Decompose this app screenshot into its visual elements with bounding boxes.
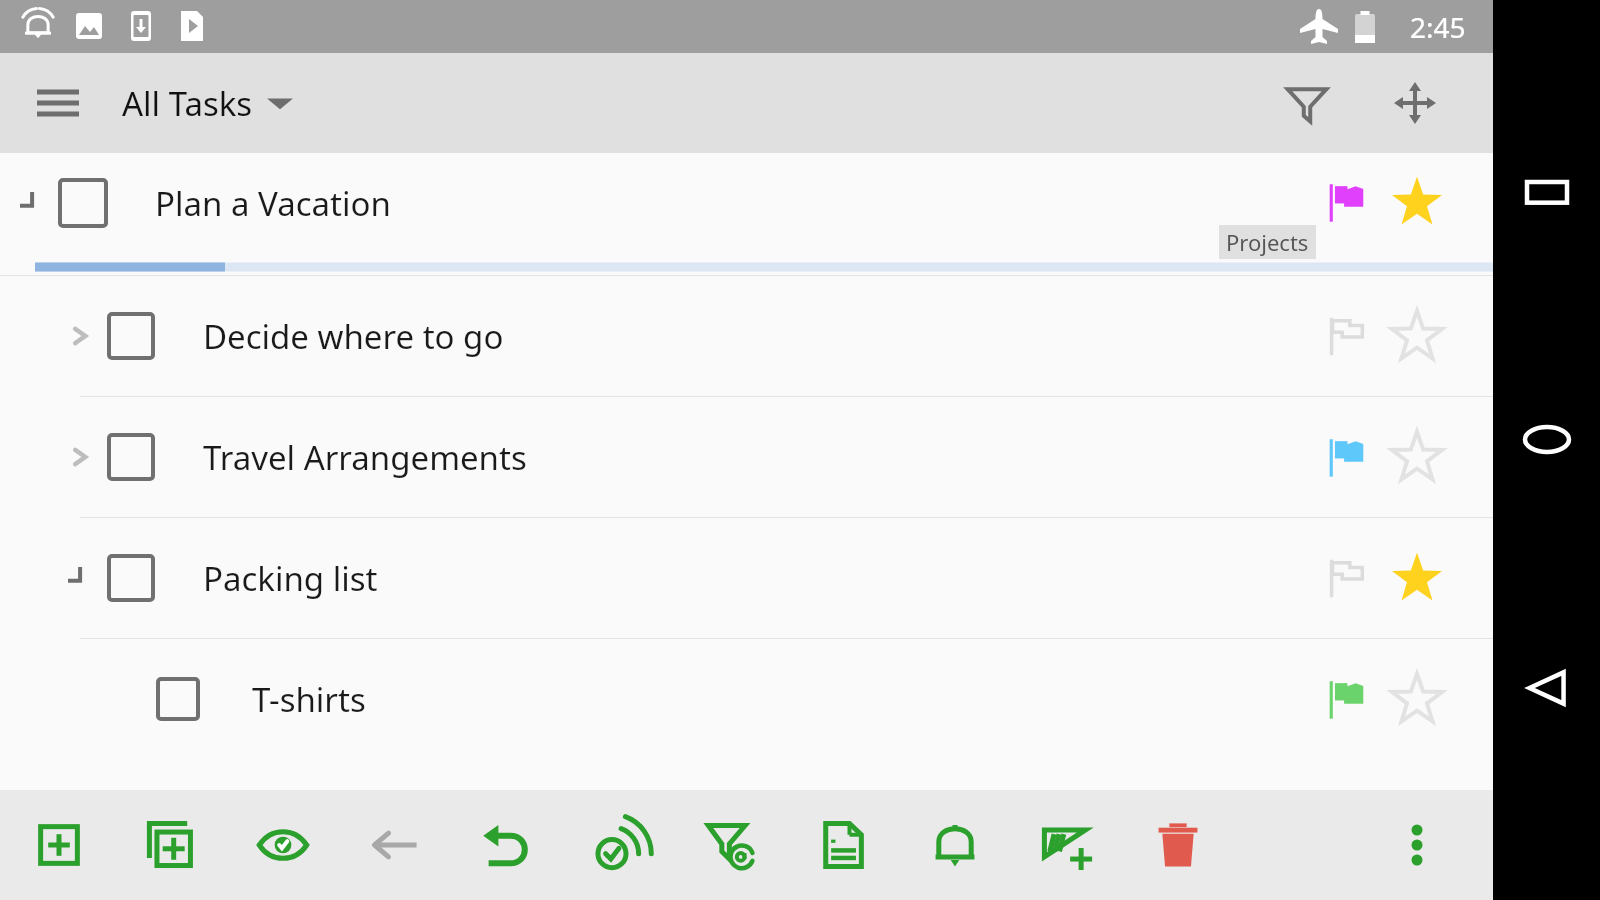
button[interactable]: Show completed — [245, 807, 321, 883]
button[interactable]: Filter — [1271, 67, 1343, 139]
staticText: Travel Arrangements — [203, 435, 527, 480]
button[interactable]: Flag — [1316, 306, 1376, 366]
button[interactable]: Add note — [1028, 807, 1104, 883]
staticText: All Tasks — [122, 81, 253, 126]
button[interactable]: Undo — [469, 807, 545, 883]
staticText: Decide where to go — [203, 314, 504, 359]
button[interactable]: Filter by context — [693, 807, 769, 883]
button[interactable] — [107, 433, 155, 481]
button[interactable] — [156, 677, 200, 721]
button[interactable]: Back — [357, 807, 433, 883]
button[interactable]: Flag — [1316, 427, 1376, 487]
button[interactable]: More options — [1381, 809, 1453, 881]
button[interactable]: Notes — [805, 807, 881, 883]
button[interactable]: Home — [1509, 402, 1585, 478]
button[interactable]: Star — [1387, 548, 1447, 608]
button[interactable]: Delete — [1140, 807, 1216, 883]
button[interactable]: Star — [1387, 669, 1447, 729]
button[interactable]: Travel Arrangements — [0, 397, 1493, 517]
button[interactable] — [107, 312, 155, 360]
staticText: T-shirts — [252, 677, 366, 722]
staticText: Plan a Vacation — [155, 181, 391, 226]
button[interactable] — [58, 178, 108, 228]
button[interactable]: All Tasks — [108, 67, 307, 139]
button[interactable]: Star — [1387, 172, 1447, 232]
button[interactable]: Recent apps — [1509, 155, 1585, 231]
button[interactable]: Add sub task — [133, 807, 209, 883]
button[interactable]: Decide where to go — [0, 276, 1493, 396]
button[interactable]: Reminder — [917, 807, 993, 883]
button[interactable]: Repeat — [581, 807, 657, 883]
button[interactable]: Star — [1387, 427, 1447, 487]
button[interactable]: Packing list — [0, 518, 1493, 638]
button[interactable]: Add task — [21, 807, 97, 883]
button[interactable]: Back — [1509, 650, 1585, 726]
button[interactable]: Flag — [1316, 669, 1376, 729]
staticText: 2:45 — [1410, 8, 1466, 46]
button[interactable]: Plan a Vacation — [0, 153, 1493, 275]
staticText: Projects — [1226, 227, 1309, 257]
button[interactable]: Flag — [1316, 548, 1376, 608]
staticText: Packing list — [203, 556, 378, 601]
button[interactable]: Star — [1387, 306, 1447, 366]
button[interactable]: T-shirts — [0, 639, 1493, 759]
button[interactable]: Flag — [1316, 172, 1376, 232]
button[interactable]: Open navigation menu — [26, 71, 90, 135]
button[interactable]: Move — [1379, 67, 1451, 139]
button[interactable] — [107, 554, 155, 602]
